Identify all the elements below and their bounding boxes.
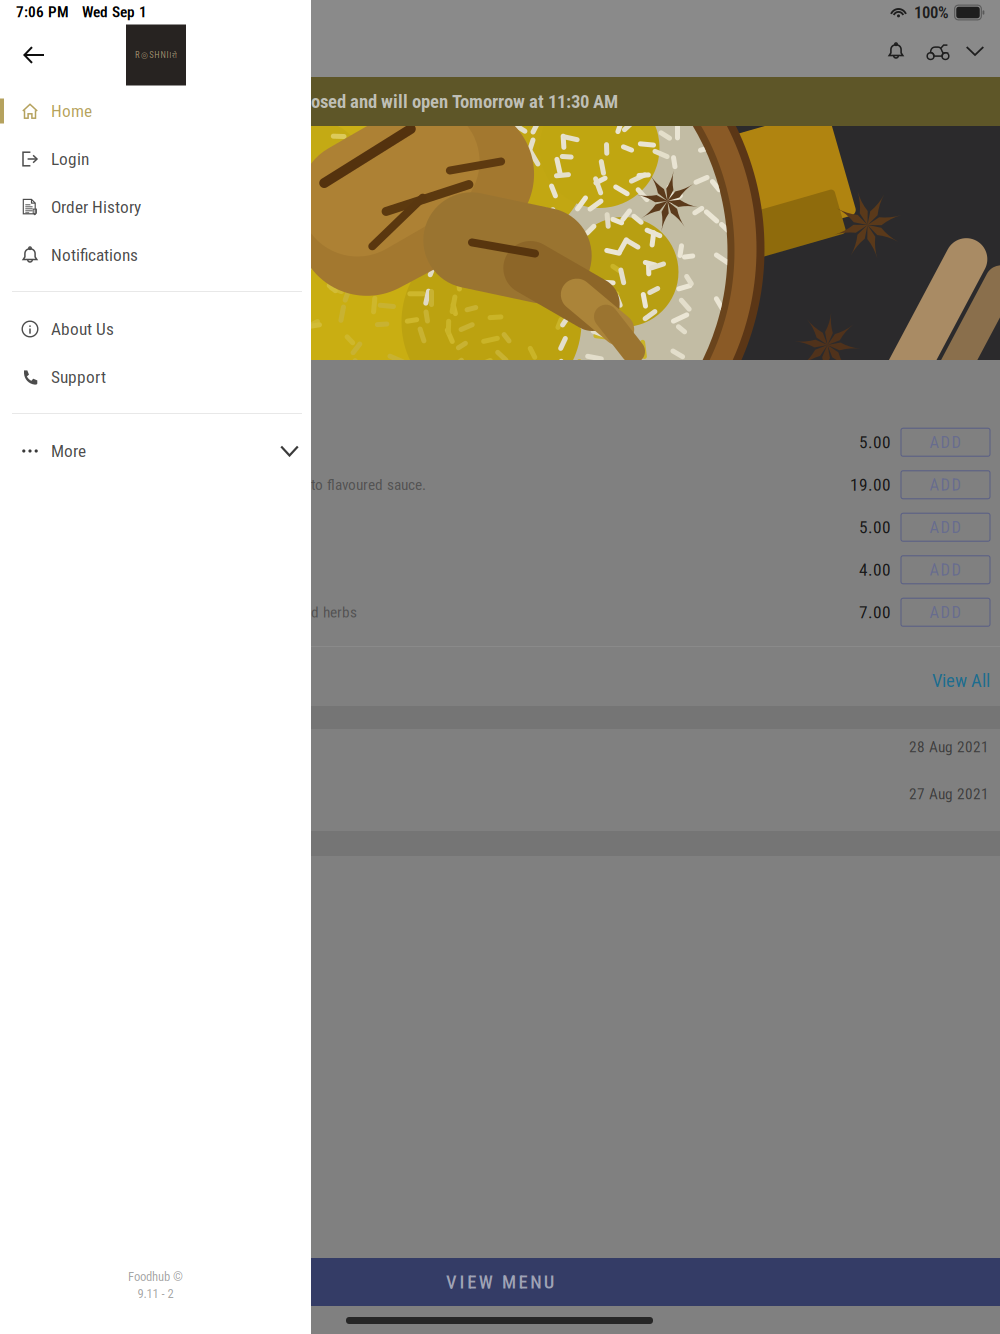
button[interactable]: Back: [20, 41, 48, 69]
staticText: d herbs: [311, 603, 357, 621]
staticText: Foodhub ©: [128, 1269, 183, 1284]
button[interactable]: Order History: [0, 183, 311, 231]
button[interactable]: VIEW MENU: [311, 1258, 1000, 1306]
button[interactable]: About Us: [0, 305, 311, 353]
staticText: 7:06 PM: [16, 3, 69, 21]
staticText: 28 Aug 2021: [909, 738, 989, 756]
button[interactable]: More: [0, 427, 311, 475]
staticText: ADD: [929, 560, 961, 579]
staticText: Home: [51, 101, 92, 121]
button[interactable]: Home: [0, 87, 311, 135]
staticText: 7.00: [859, 602, 891, 622]
button[interactable]: ADD: [901, 428, 990, 456]
staticText: ADD: [929, 517, 961, 537]
staticText: Order History: [51, 197, 141, 217]
staticText: More: [51, 441, 86, 461]
staticText: Wed Sep 1: [82, 3, 147, 21]
button[interactable]: More: [960, 36, 990, 66]
button[interactable]: ADD: [901, 513, 990, 541]
button[interactable]: ADD: [901, 471, 990, 499]
button[interactable]: Notifications: [880, 35, 912, 67]
staticText: ADD: [929, 432, 961, 452]
staticText: 100%: [914, 3, 949, 22]
staticText: Support: [51, 367, 106, 387]
button[interactable]: Support: [0, 353, 311, 401]
button[interactable]: ADD: [901, 598, 990, 626]
staticText: 5.00: [859, 517, 891, 537]
staticText: 19.00: [850, 475, 891, 495]
staticText: osed and will open Tomorrow at 11:30 AM: [311, 91, 618, 112]
staticText: VIEW MENU: [446, 1271, 555, 1293]
button[interactable]: Delivery options: [922, 35, 954, 67]
staticText: ADD: [929, 475, 961, 494]
button[interactable]: View All: [932, 648, 990, 705]
staticText: R◎SHNI: [135, 50, 168, 60]
staticText: View All: [932, 670, 990, 691]
staticText: 27 Aug 2021: [909, 785, 989, 803]
staticText: 9.11 - 2: [137, 1286, 173, 1301]
staticText: Notifications: [51, 245, 138, 265]
staticText: ADD: [929, 602, 961, 622]
staticText: 4.00: [859, 560, 891, 580]
staticText: रो: [172, 50, 177, 60]
button[interactable]: Notifications: [0, 231, 311, 279]
staticText: Login: [51, 149, 89, 169]
button[interactable]: ADD: [901, 556, 990, 584]
staticText: 5.00: [859, 432, 891, 452]
button[interactable]: Login: [0, 135, 311, 183]
staticText: About Us: [51, 319, 114, 339]
staticText: to flavoured sauce.: [311, 476, 426, 494]
